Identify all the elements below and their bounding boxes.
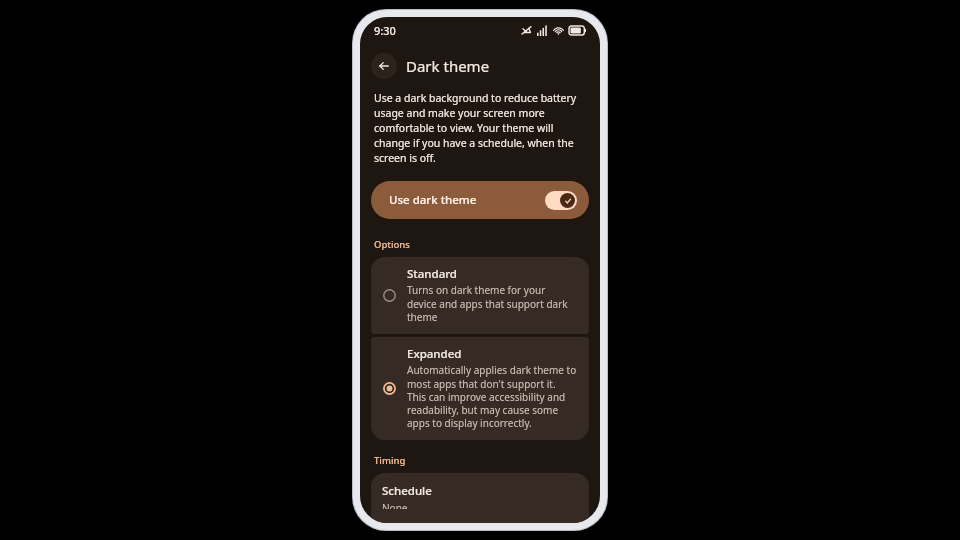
staticText: Automatically applies dark theme to most… bbox=[407, 363, 577, 430]
staticText: 9:30 bbox=[374, 23, 396, 38]
button[interactable]: Use dark theme bbox=[371, 181, 589, 219]
staticText: Use a dark background to reduce battery … bbox=[374, 91, 586, 165]
button[interactable]: Schedule bbox=[371, 473, 589, 523]
button[interactable]: Back bbox=[371, 53, 397, 79]
staticText: Use dark theme bbox=[389, 192, 477, 208]
staticText: Dark theme bbox=[406, 56, 490, 76]
button[interactable]: Expanded bbox=[371, 337, 589, 440]
staticText: Timing bbox=[374, 454, 406, 467]
staticText: Turns on dark theme for your device and … bbox=[407, 283, 577, 324]
button[interactable]: Standard bbox=[371, 257, 589, 334]
staticText: None bbox=[382, 501, 408, 509]
staticText: Expanded bbox=[407, 346, 462, 362]
staticText: Schedule bbox=[382, 483, 432, 499]
staticText: Options bbox=[374, 238, 410, 251]
staticText: Standard bbox=[407, 266, 457, 282]
